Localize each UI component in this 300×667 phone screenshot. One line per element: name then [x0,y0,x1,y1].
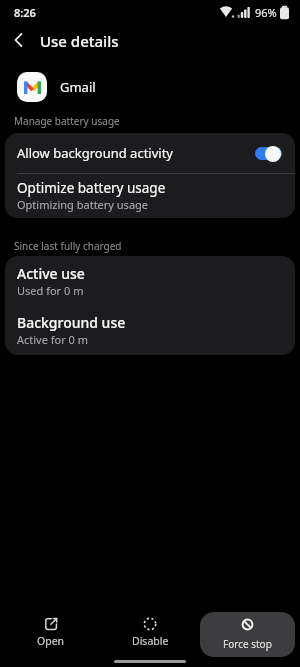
staticText: Optimizing battery usage [17,197,149,212]
staticText: 96% [255,5,277,20]
staticText: 8:26 [14,5,36,20]
staticText: Background use [17,313,126,332]
button[interactable]: Background use [5,313,295,347]
button[interactable]: Active use [5,264,295,298]
staticText: Active use [17,264,85,283]
button[interactable]: Gmail [17,72,96,102]
staticText: Used for 0 m [17,283,84,298]
button[interactable]: Optimize battery usage [5,174,295,218]
staticText: Use details [40,31,119,51]
button[interactable]: Open [20,605,82,653]
staticText: Open [37,634,65,648]
staticText: Optimize battery usage [17,179,166,197]
staticText: Active for 0 m [17,332,89,347]
staticText: Manage battery usage [14,114,120,128]
staticText: Force stop [223,637,272,651]
button[interactable]: Allow background activity [5,133,295,173]
button[interactable] [3,24,35,56]
staticText: Since last fully charged [14,239,122,253]
button[interactable] [255,145,283,162]
staticText: Allow background activity [17,144,173,162]
staticText: Gmail [60,78,96,96]
button[interactable]: Force stop [200,612,295,657]
staticText: Disable [132,634,169,648]
button[interactable]: Disable [119,605,181,653]
